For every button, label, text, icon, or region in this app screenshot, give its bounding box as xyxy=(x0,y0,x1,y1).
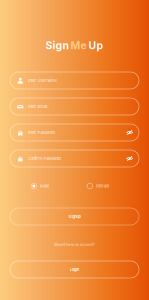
button[interactable]: Signup xyxy=(10,208,139,225)
staticText: Enter Password xyxy=(28,130,55,135)
button[interactable]: Male xyxy=(31,183,49,189)
button[interactable]: Enter Password xyxy=(10,124,139,141)
button[interactable]: Enter Email xyxy=(10,98,139,115)
staticText: Enter Username xyxy=(28,78,57,83)
staticText: Up xyxy=(86,39,103,52)
staticText: Sign xyxy=(45,39,70,52)
button[interactable]: Confirm Password xyxy=(10,150,139,167)
button[interactable]: Should have an account? xyxy=(54,242,95,247)
staticText: Male xyxy=(40,184,49,188)
staticText: Female xyxy=(96,184,109,188)
staticText: Confirm Password xyxy=(28,156,61,161)
staticText: Login xyxy=(70,267,79,272)
button[interactable]: Enter Username xyxy=(10,72,139,89)
staticText: Should have an account? xyxy=(54,242,95,247)
staticText: Enter Email xyxy=(28,104,48,109)
staticText: Me xyxy=(70,39,86,52)
staticText: Signup xyxy=(68,214,80,219)
button[interactable]: Female xyxy=(87,183,109,189)
button[interactable]: Login xyxy=(10,261,139,278)
